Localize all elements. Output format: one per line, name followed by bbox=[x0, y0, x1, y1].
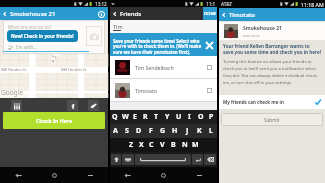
staticText: D bbox=[136, 126, 142, 136]
staticText: 11:1 bbox=[206, 1, 216, 7]
button[interactable]: Back bbox=[110, 167, 145, 183]
staticText: I'm with... bbox=[16, 44, 37, 50]
staticText: 13:12 bbox=[95, 1, 107, 7]
button[interactable]: DONE bbox=[203, 7, 217, 20]
staticText: H bbox=[172, 126, 178, 136]
staticText: Turning this feature on allows your frie… bbox=[223, 59, 321, 86]
button[interactable]: Friends bbox=[11, 100, 22, 111]
button[interactable]: Twitter bbox=[88, 100, 99, 111]
staticText: DONE bbox=[204, 11, 217, 17]
button[interactable]: W bbox=[120, 110, 130, 124]
button[interactable]: U bbox=[173, 110, 184, 124]
staticText: Submit bbox=[264, 117, 280, 123]
button[interactable]: Dismiss bbox=[203, 39, 216, 52]
staticText: M bbox=[192, 140, 199, 150]
button[interactable]: New! Check in your friends! bbox=[7, 30, 78, 42]
staticText: Timotato bbox=[135, 87, 158, 94]
staticText: Smokehouse 21 bbox=[10, 10, 56, 18]
staticText: Your friend Kellen Barranger wants to sa… bbox=[223, 43, 321, 55]
staticText: J bbox=[186, 126, 189, 136]
staticText: What are you up to? bbox=[8, 24, 52, 30]
staticText: AT&T bbox=[221, 1, 233, 8]
button[interactable]: Facebook bbox=[67, 100, 78, 111]
staticText: K bbox=[197, 126, 202, 136]
staticText: X bbox=[139, 140, 144, 150]
button[interactable]: Enter bbox=[192, 154, 203, 165]
button[interactable]: Timotato bbox=[110, 79, 217, 101]
button[interactable]: D bbox=[133, 124, 145, 138]
button[interactable]: B bbox=[168, 138, 179, 152]
staticText: O bbox=[198, 112, 204, 122]
button[interactable]: R bbox=[140, 110, 151, 124]
button[interactable]: C bbox=[146, 138, 157, 152]
button[interactable]: Home bbox=[145, 167, 181, 183]
staticText: Y bbox=[165, 112, 170, 122]
button[interactable]: J bbox=[181, 124, 193, 138]
button[interactable]: Recents bbox=[181, 167, 217, 183]
button[interactable]: Back bbox=[0, 167, 36, 183]
staticText: New! Check in your friends! bbox=[11, 33, 74, 39]
staticText: T bbox=[154, 112, 159, 122]
button[interactable]: Recents bbox=[72, 167, 108, 183]
staticText: P bbox=[209, 112, 214, 122]
staticText: N bbox=[182, 140, 188, 150]
button[interactable]: E bbox=[130, 110, 140, 124]
staticText: R bbox=[143, 112, 148, 122]
button[interactable]: Friends bbox=[110, 7, 203, 20]
button[interactable]: Home bbox=[36, 167, 72, 183]
button[interactable]: V bbox=[157, 138, 168, 152]
button[interactable]: T bbox=[151, 110, 162, 124]
button[interactable]: Shift bbox=[111, 154, 121, 165]
button[interactable]: S bbox=[121, 124, 133, 138]
button[interactable]: L bbox=[205, 124, 217, 138]
staticText: F bbox=[149, 126, 153, 136]
button[interactable]: Tim Sendelbach bbox=[110, 56, 217, 78]
button[interactable]: Y bbox=[162, 110, 173, 124]
button[interactable]: I bbox=[184, 110, 195, 124]
button[interactable]: Add photo bbox=[86, 26, 102, 46]
button[interactable]: K bbox=[193, 124, 205, 138]
button[interactable]: O bbox=[195, 110, 206, 124]
button[interactable]: H bbox=[169, 124, 181, 138]
staticText: Tim bbox=[113, 23, 123, 31]
button[interactable]: Tim bbox=[110, 20, 217, 35]
button[interactable]: Z bbox=[126, 138, 136, 152]
button[interactable]: Emoji bbox=[122, 154, 134, 165]
staticText: C bbox=[149, 140, 154, 150]
staticText: was sent bbox=[243, 33, 260, 38]
button[interactable]: M bbox=[190, 138, 201, 152]
staticText: L bbox=[209, 126, 213, 136]
button[interactable]: Info bbox=[95, 8, 107, 20]
staticText: S bbox=[125, 126, 129, 136]
button[interactable]: Submit bbox=[221, 113, 323, 126]
staticText: B bbox=[171, 140, 176, 150]
staticText: V bbox=[160, 140, 165, 150]
button[interactable]: Backspace bbox=[204, 154, 216, 165]
staticText: A bbox=[113, 126, 118, 136]
staticText: Google bbox=[1, 88, 23, 97]
staticText: Smokehouse 21 bbox=[243, 25, 282, 32]
staticText: NW Flanders St bbox=[1, 67, 27, 72]
button[interactable]: Smokehouse 21 bbox=[219, 22, 325, 40]
button[interactable]: G bbox=[157, 124, 169, 138]
staticText: Friends bbox=[120, 10, 142, 18]
staticText: G bbox=[160, 126, 166, 136]
staticText: Save your friends some time! Select who … bbox=[113, 38, 206, 56]
staticText: Timotato bbox=[229, 11, 256, 19]
staticText: W bbox=[122, 112, 129, 122]
button[interactable]: F bbox=[145, 124, 157, 138]
button[interactable]: X bbox=[136, 138, 146, 152]
staticText: My friends can check me in bbox=[223, 99, 284, 105]
button[interactable]: Timotato bbox=[219, 8, 325, 21]
staticText: 11:18 AM bbox=[301, 1, 324, 8]
button[interactable]: A bbox=[110, 124, 121, 138]
button[interactable]: N bbox=[179, 138, 190, 152]
button[interactable]: P bbox=[206, 110, 217, 124]
staticText: Tim Sendelbach bbox=[135, 64, 174, 71]
button[interactable]: Q bbox=[110, 110, 120, 124]
button[interactable]: Check In Here bbox=[3, 112, 105, 129]
staticText: U bbox=[176, 112, 182, 122]
button[interactable]: Space bbox=[135, 154, 191, 165]
button[interactable]: My friends can check me in bbox=[219, 95, 325, 109]
button[interactable]: Smokehouse 21 bbox=[0, 7, 108, 20]
